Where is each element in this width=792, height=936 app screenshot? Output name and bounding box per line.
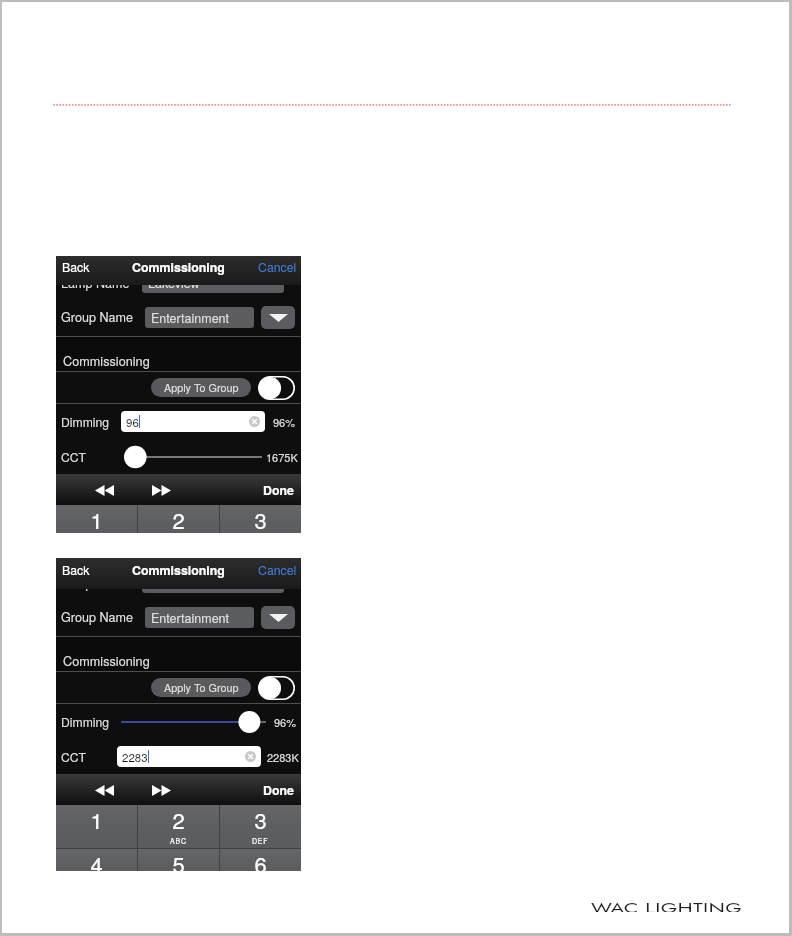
staticText: Apply To Group [164,380,239,395]
staticText: 2 [172,804,185,836]
staticText: 3 [254,504,267,533]
button[interactable]: Cancel [258,561,297,579]
staticText: Lamp Name [61,574,130,592]
staticText: 2283K [267,749,299,765]
button[interactable] [121,710,266,734]
staticText: Commissioning [63,651,150,669]
button[interactable]: Done [263,781,294,799]
button[interactable]: Entertainment [145,607,254,628]
staticText: Lakeview [148,274,200,292]
staticText: Done [263,481,294,499]
staticText: Dimming [61,413,110,430]
button[interactable]: Previous field [91,479,117,501]
staticText: CCT [61,748,87,765]
staticText: 5 [172,848,185,871]
staticText: Entertainment [151,309,230,327]
button[interactable]: 6 [220,849,301,871]
button[interactable]: Previous field [91,779,117,801]
button[interactable]: Next field [148,779,174,801]
button[interactable]: Apply To Group toggle [258,376,295,400]
staticText: 96% [274,714,297,730]
button[interactable]: Apply To Group [151,678,251,697]
button[interactable]: Open group list [261,606,295,629]
button[interactable]: 2283 [117,746,261,767]
staticText: 1675K [266,449,298,465]
button[interactable]: Open group list [261,306,295,329]
staticText: 2283 [122,749,148,765]
staticText: Cancel [258,258,297,276]
button[interactable]: Back [62,258,90,276]
staticText: ABC [170,836,187,846]
button[interactable]: 4 [56,849,137,871]
staticText: 96% [273,414,296,430]
staticText: Apply To Group [164,680,239,695]
staticText: Lakeview [148,574,200,592]
button[interactable]: 5 [138,849,219,871]
button[interactable]: Back [62,561,90,579]
staticText: 1 [90,504,103,533]
button[interactable]: 3 [220,505,301,533]
staticText: Dimming [61,713,110,730]
staticText: Back [62,258,90,276]
staticText: Group Name [61,608,133,626]
staticText: 96 [126,414,139,430]
button[interactable]: 3 [220,805,301,848]
button[interactable]: Entertainment [145,307,254,328]
button[interactable]: 2 [138,805,219,848]
staticText: 2 [172,504,185,533]
button[interactable]: Done [263,481,294,499]
staticText: WAC LIGHTING [591,898,742,912]
button[interactable]: Cancel [258,258,297,276]
staticText: 1 [90,804,103,836]
staticText: 3 [254,804,267,836]
staticText: Lamp Name [61,274,130,292]
staticText: 6 [254,848,267,871]
button[interactable]: Apply To Group [151,378,251,397]
staticText: Commissioning [63,351,150,369]
button[interactable]: 1 [56,505,137,533]
button[interactable]: Next field [148,479,174,501]
staticText: Commissioning [132,258,225,276]
button[interactable]: 2 [138,505,219,533]
staticText: Entertainment [151,609,230,627]
staticText: Cancel [258,561,297,579]
button[interactable]: Apply To Group toggle [258,676,295,700]
staticText: Done [263,781,294,799]
staticText: DEF [252,836,269,846]
staticText: Back [62,561,90,579]
staticText: Commissioning [132,561,225,579]
button[interactable] [124,445,262,469]
button[interactable]: 96 [121,411,265,432]
button[interactable]: 1 [56,805,137,848]
staticText: 4 [90,848,103,871]
staticText: Group Name [61,308,133,326]
staticText: CCT [61,448,87,465]
